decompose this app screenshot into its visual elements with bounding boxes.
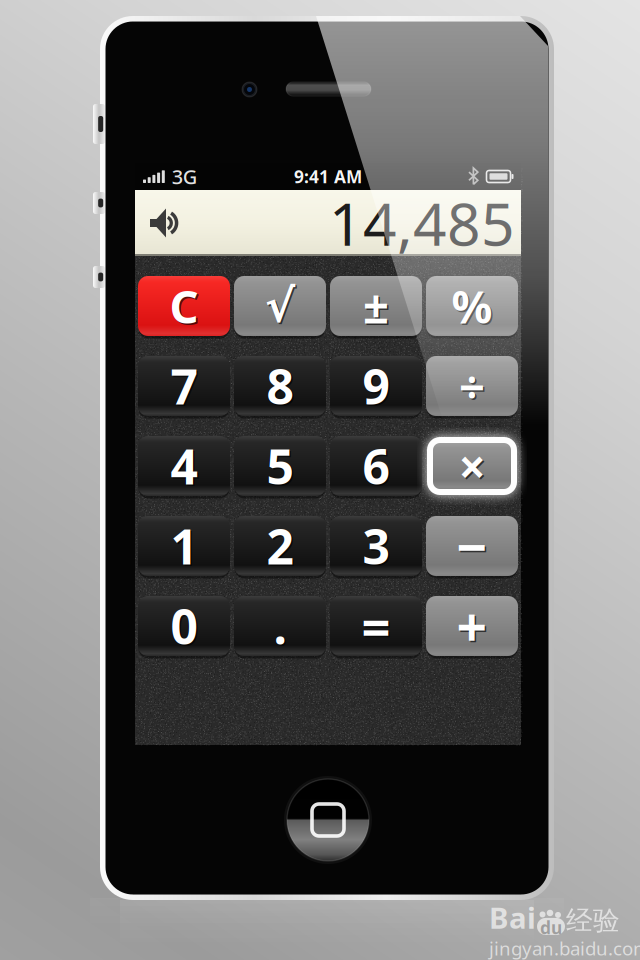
staticText: 14,485 <box>329 184 515 262</box>
button[interactable]: 9 <box>330 356 422 416</box>
staticText: 9 <box>364 356 391 419</box>
button[interactable]: 3 <box>330 516 422 576</box>
staticText: 0 <box>170 594 197 658</box>
staticText: 5 <box>268 436 295 499</box>
button[interactable]: ÷ <box>426 356 518 416</box>
staticText: − <box>456 511 487 581</box>
button[interactable]: 1 <box>138 516 230 576</box>
staticText: 9:41 AM <box>294 165 362 188</box>
staticText: ÷ <box>459 356 485 416</box>
staticText: 7 <box>172 356 199 419</box>
staticText: 3 <box>364 516 391 579</box>
staticText: − <box>458 512 489 583</box>
staticText: 8 <box>266 354 293 418</box>
staticText: 3 <box>362 514 389 578</box>
staticText: 经验 <box>566 904 620 937</box>
button[interactable]: 6 <box>330 436 422 496</box>
staticText: 2 <box>268 516 295 579</box>
staticText: 2 <box>266 514 293 578</box>
staticText: √ <box>265 280 295 332</box>
button[interactable]: − <box>426 516 518 576</box>
staticText: 6 <box>362 434 389 498</box>
staticText: 4 <box>170 434 197 498</box>
staticText: ± <box>364 277 390 338</box>
staticText: × <box>460 436 487 499</box>
staticText: 5 <box>266 434 293 498</box>
staticText: du <box>540 916 562 939</box>
staticText: jingyan.baidu.com <box>489 936 640 960</box>
staticText: + <box>456 591 487 661</box>
staticText: . <box>275 596 288 659</box>
staticText: 9 <box>362 354 389 418</box>
staticText: . <box>273 594 286 658</box>
staticText: = <box>363 594 392 661</box>
button[interactable]: 2 <box>234 516 326 576</box>
staticText: = <box>361 592 390 660</box>
staticText: % <box>451 276 492 336</box>
staticText: √ <box>266 282 296 333</box>
staticText: ÷ <box>460 357 486 418</box>
staticText: 8 <box>268 356 295 419</box>
staticText: 1 <box>172 516 199 579</box>
button[interactable]: . <box>234 596 326 656</box>
staticText: 3G <box>172 163 198 190</box>
staticText: Bai <box>489 898 536 937</box>
staticText: % <box>453 277 494 338</box>
staticText: × <box>458 434 485 498</box>
staticText: 1 <box>170 514 197 578</box>
staticText: 7 <box>170 354 197 418</box>
button[interactable]: 5 <box>234 436 326 496</box>
staticText: ± <box>363 276 389 336</box>
staticText: 4 <box>172 436 199 499</box>
button[interactable]: 0 <box>138 596 230 656</box>
button[interactable]: = <box>330 596 422 656</box>
button[interactable]: ± <box>330 276 422 336</box>
staticText: C <box>169 276 198 336</box>
button[interactable]: 8 <box>234 356 326 416</box>
staticText: + <box>458 592 489 663</box>
button[interactable]: + <box>426 596 518 656</box>
staticText: C <box>171 277 200 338</box>
button[interactable]: Home <box>283 775 373 865</box>
button[interactable]: C <box>138 276 230 336</box>
staticText: 6 <box>364 436 391 499</box>
button[interactable]: 7 <box>138 356 230 416</box>
button[interactable]: % <box>426 276 518 336</box>
button[interactable]: √ <box>234 276 326 336</box>
staticText: 0 <box>172 596 199 659</box>
button[interactable]: 4 <box>138 436 230 496</box>
button[interactable]: × <box>426 436 518 496</box>
